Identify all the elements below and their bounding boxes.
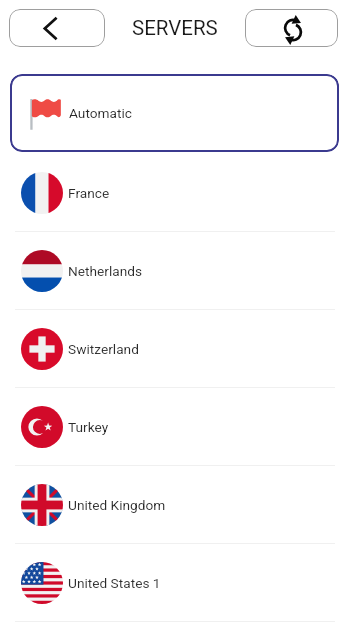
staticText: United States 1 xyxy=(68,575,161,591)
staticText: Switzerland xyxy=(68,341,139,357)
button[interactable]: United States 1 xyxy=(0,544,350,622)
button[interactable]: Switzerland xyxy=(0,310,350,388)
button[interactable]: United Kingdom xyxy=(0,466,350,544)
button[interactable]: Netherlands xyxy=(0,232,350,310)
staticText: Turkey xyxy=(68,419,109,435)
staticText: SERVERS xyxy=(132,16,218,40)
button[interactable]: France xyxy=(0,154,350,232)
staticText: Netherlands xyxy=(68,263,143,279)
button[interactable]: Back xyxy=(9,9,105,47)
staticText: France xyxy=(68,185,110,201)
staticText: Automatic xyxy=(69,105,132,121)
button[interactable]: Turkey xyxy=(0,388,350,466)
button[interactable]: Automatic xyxy=(10,74,339,152)
button[interactable]: Refresh xyxy=(245,9,338,47)
staticText: United Kingdom xyxy=(68,497,166,513)
